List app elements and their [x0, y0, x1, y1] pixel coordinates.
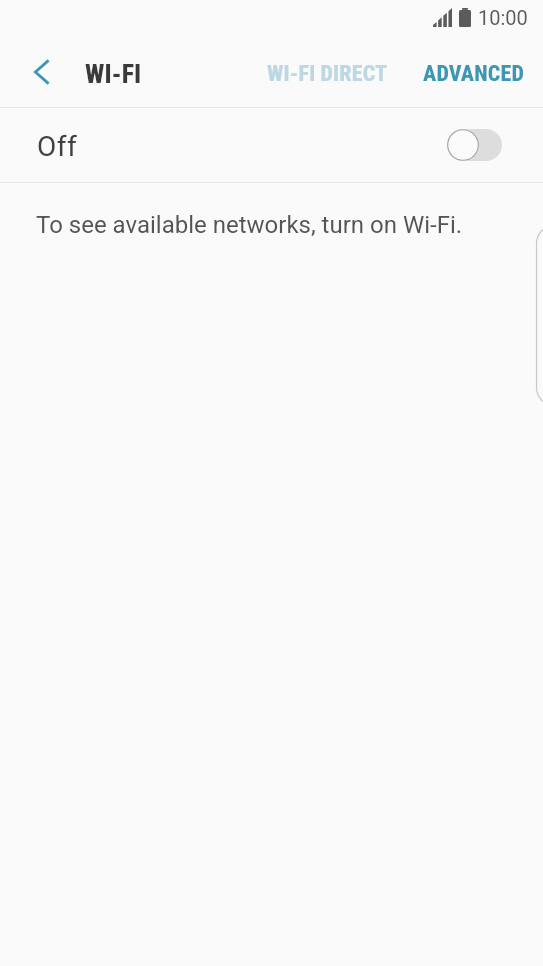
staticText: Off: [37, 130, 78, 163]
button[interactable]: Wi-Fi off: [447, 129, 502, 161]
staticText: WI-FI: [85, 59, 142, 89]
staticText: 10:00: [478, 6, 528, 29]
button[interactable]: Navigate up: [16, 42, 67, 102]
button[interactable]: ADVANCED: [411, 47, 536, 101]
staticText: ADVANCED: [423, 61, 524, 87]
staticText: WI-FI DIRECT: [267, 61, 388, 87]
button[interactable]: WI-FI DIRECT: [255, 47, 400, 101]
staticText: To see available networks, turn on Wi-Fi…: [36, 211, 463, 239]
button[interactable]: Off: [0, 108, 543, 182]
